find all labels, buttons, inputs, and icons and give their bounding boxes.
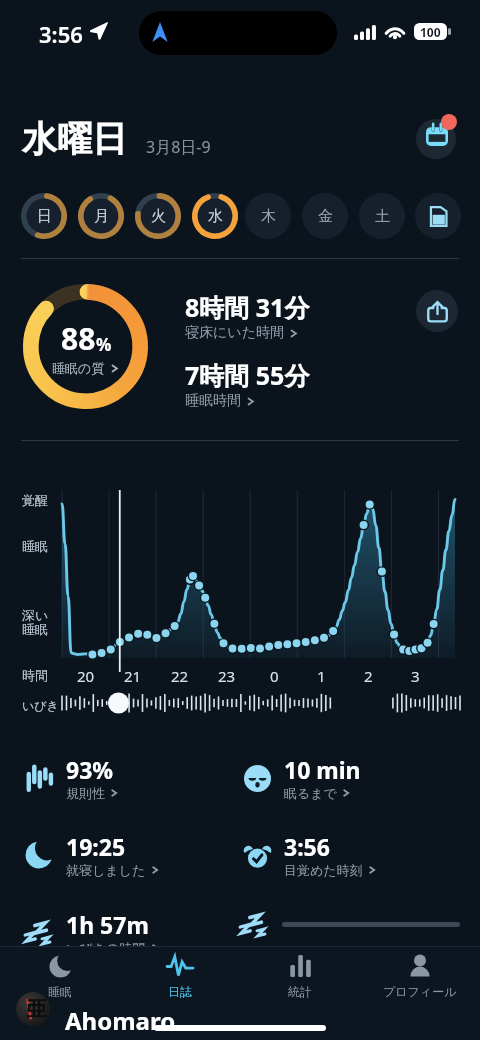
button[interactable]: 金 [302, 193, 348, 239]
staticText: 月 [94, 207, 109, 226]
staticText: 2 [364, 666, 373, 686]
button[interactable]: 3:56 [242, 831, 377, 878]
staticText: 木 [261, 207, 276, 226]
staticText: 3:56 [284, 831, 330, 862]
staticText: 水曜日 [22, 117, 127, 161]
staticText: 8時間 31分 [185, 290, 310, 324]
button[interactable]: 10 min [242, 754, 361, 801]
staticText: 就寝しました [66, 862, 146, 878]
staticText: 88 [61, 318, 96, 359]
staticText: プロフィール [383, 984, 457, 999]
button[interactable]: Share [416, 290, 458, 332]
staticText: 睡眠時間 [185, 392, 241, 410]
staticText: 規則性 [66, 785, 105, 801]
button[interactable]: 93% [24, 754, 119, 801]
staticText: 睡眠の質 [52, 360, 105, 376]
staticText: 水 [208, 207, 223, 226]
button[interactable]: プロフィール [360, 951, 480, 1007]
staticText: 23 [218, 666, 236, 686]
button[interactable]: 睡眠 [0, 951, 120, 1007]
button[interactable]: 木 [245, 193, 291, 239]
button[interactable]: Calendar [414, 114, 462, 162]
button[interactable]: 水 [192, 193, 238, 239]
staticText: 金 [318, 207, 333, 226]
staticText: 93% [66, 754, 114, 785]
button[interactable]: 日 [21, 193, 67, 239]
staticText: 20 [77, 666, 95, 686]
staticText: % [96, 333, 112, 356]
staticText: 土 [375, 207, 390, 226]
staticText: 10 min [284, 754, 361, 785]
staticText: 22 [171, 666, 189, 686]
staticText: 睡眠 [22, 538, 48, 554]
staticText: いびきの時間 [66, 940, 146, 956]
staticText: 7時間 55分 [185, 358, 310, 392]
staticText: 100 [420, 24, 441, 40]
staticText: 21 [124, 666, 142, 686]
staticText: 統計 [288, 984, 312, 999]
button[interactable]: 日誌 [120, 951, 240, 1007]
button[interactable]: 土 [359, 193, 405, 239]
staticText: 亜 [26, 996, 47, 1022]
button[interactable]: 火 [135, 193, 181, 239]
staticText: Ahomaro [65, 1004, 176, 1037]
staticText: 日 [37, 207, 52, 226]
staticText: 3月8日-9 [146, 136, 211, 158]
staticText: いびき [22, 698, 59, 713]
button[interactable]: Notes [415, 193, 461, 239]
staticText: 3:56 [39, 19, 83, 49]
staticText: 1h 57m [66, 909, 149, 940]
button[interactable]: 19:25 [24, 831, 160, 878]
staticText: 火 [151, 207, 166, 226]
staticText: 0 [270, 666, 279, 686]
staticText: 19:25 [66, 831, 126, 862]
button[interactable]: 7時間 55分 [185, 358, 310, 410]
staticText: 睡眠 [48, 984, 72, 999]
staticText: 1 [317, 666, 326, 686]
staticText: 時間 [22, 667, 48, 683]
button[interactable]: 統計 [240, 951, 360, 1007]
staticText: 覚醒 [22, 492, 48, 508]
staticText: 寝床にいた時間 [185, 324, 284, 342]
staticText: 深い 睡眠 [22, 607, 49, 638]
staticText: 眠るまで [284, 785, 337, 801]
button[interactable]: 月 [78, 193, 124, 239]
staticText: 3 [411, 666, 420, 686]
button[interactable]: 1h 57m [24, 909, 160, 956]
staticText: 目覚めた時刻 [284, 862, 363, 878]
button[interactable]: 8時間 31分 [185, 290, 310, 342]
staticText: 日誌 [168, 984, 192, 999]
